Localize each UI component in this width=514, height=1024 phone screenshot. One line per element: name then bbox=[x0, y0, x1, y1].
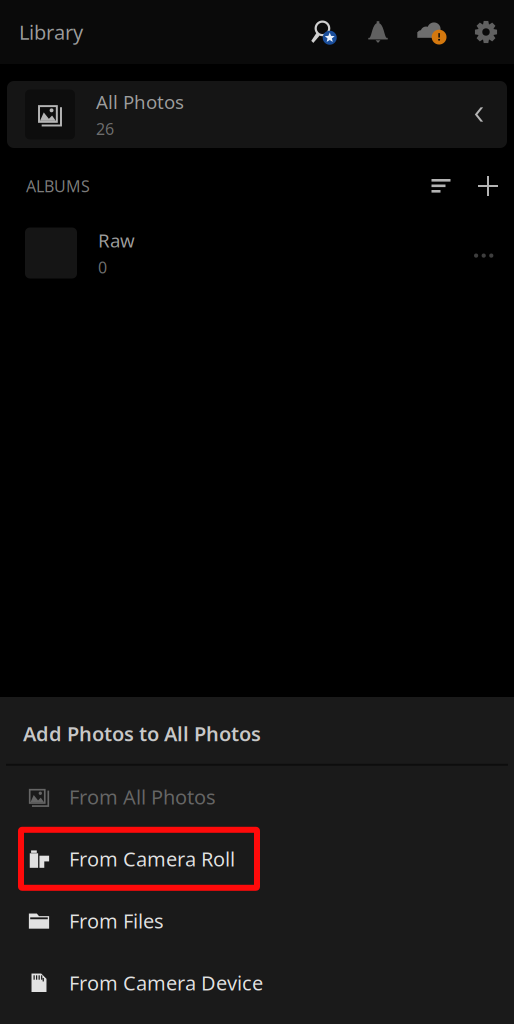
button[interactable]: Add album bbox=[468, 166, 508, 206]
staticText: From Camera Roll bbox=[69, 845, 235, 872]
button[interactable]: From All Photos bbox=[0, 766, 514, 828]
button[interactable]: Notifications bbox=[351, 9, 405, 55]
staticText: All Photos bbox=[96, 89, 184, 114]
staticText: Add Photos to All Photos bbox=[23, 720, 261, 747]
button[interactable]: From Files bbox=[0, 890, 514, 952]
button[interactable]: Search bbox=[297, 9, 351, 55]
button[interactable]: Cloud status bbox=[405, 9, 459, 55]
staticText: Library bbox=[19, 19, 83, 45]
staticText: From Camera Device bbox=[69, 969, 263, 996]
staticText: From All Photos bbox=[69, 783, 216, 810]
button[interactable]: From Camera Device bbox=[0, 952, 514, 1014]
staticText: ALBUMS bbox=[26, 175, 90, 197]
button[interactable]: Sort albums bbox=[420, 166, 462, 206]
button[interactable]: Settings bbox=[459, 9, 513, 55]
staticText: 0 bbox=[98, 257, 107, 278]
button[interactable]: Raw bbox=[0, 222, 514, 284]
button[interactable]: All Photos bbox=[7, 81, 507, 148]
staticText: Raw bbox=[98, 228, 135, 253]
staticText: 26 bbox=[96, 118, 114, 139]
staticText: From Files bbox=[69, 907, 164, 934]
button[interactable]: From Camera Roll bbox=[0, 828, 514, 890]
